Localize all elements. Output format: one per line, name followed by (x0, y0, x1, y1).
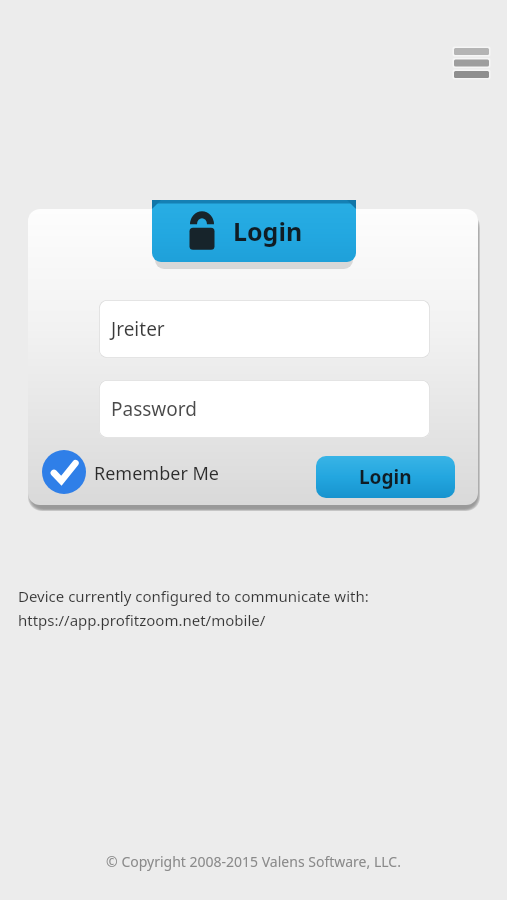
button[interactable]: Remember Me (41, 449, 231, 495)
button[interactable]: Password (99, 380, 430, 438)
staticText: © Copyright 2008-2015 Valens Software, L… (106, 852, 401, 871)
button[interactable]: Jreiter (99, 300, 430, 358)
staticText: Login (233, 214, 303, 248)
staticText: Password (111, 396, 197, 422)
staticText: Device currently configured to communica… (18, 586, 369, 606)
button[interactable]: Login (316, 456, 455, 498)
staticText: https://app.profitzoom.net/mobile/ (18, 610, 266, 630)
button[interactable]: Menu (448, 42, 496, 84)
staticText: Jreiter (111, 316, 165, 342)
staticText: Login (359, 464, 412, 490)
button[interactable]: Login (152, 200, 356, 266)
staticText: Remember Me (94, 461, 219, 486)
